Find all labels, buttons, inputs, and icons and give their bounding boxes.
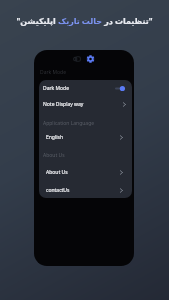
button[interactable]: About Us: [39, 165, 132, 180]
button[interactable]: Note Display way: [39, 96, 132, 113]
button[interactable]: Settings: [86, 55, 95, 63]
button[interactable]: Dark mode switch: [115, 85, 128, 92]
staticText: English: [46, 134, 64, 141]
staticText: About Us: [46, 169, 68, 176]
staticText: Note Display way: [43, 101, 84, 108]
staticText: Dark Mode: [43, 85, 69, 92]
staticText: "تنظیمات در حالت تاریک اپلیکیشن": [16, 15, 153, 26]
button[interactable]: contactUs: [39, 182, 132, 198]
staticText: contactUs: [46, 187, 70, 194]
staticText: Dark Mode: [40, 69, 66, 76]
button[interactable]: English: [39, 130, 132, 145]
button[interactable]: Dark Mode: [39, 80, 132, 96]
staticText: About Us: [43, 152, 65, 159]
button[interactable]: Theme: [73, 55, 82, 63]
staticText: Application Language: [43, 120, 95, 127]
